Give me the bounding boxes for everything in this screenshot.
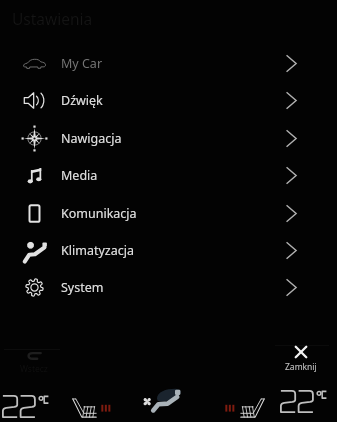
button[interactable]: Temperatura pasazera 22 stopnie — [280, 390, 330, 415]
button[interactable]: Dźwięk — [0, 82, 337, 119]
button[interactable]: Nawigacja — [0, 120, 337, 157]
button[interactable]: Zamknij — [277, 346, 325, 373]
other: Wstecz — [26, 350, 42, 361]
button[interactable]: Komunikacja — [0, 195, 337, 232]
button[interactable]: Podgrzewanie fotela pasazera — [239, 398, 266, 418]
button[interactable]: Wentylacja fotela — [142, 388, 187, 413]
staticText: Klimatyzacja — [61, 242, 134, 259]
button[interactable]: Podgrzewanie fotela kierowcy — [71, 398, 98, 418]
staticText: System — [61, 279, 104, 296]
other: Zamknij — [295, 346, 307, 358]
staticText: My Car — [61, 55, 103, 72]
button[interactable]: Temperatura kierowcy 22 stopnie — [2, 395, 52, 420]
button[interactable]: My Car — [0, 45, 337, 82]
staticText: Media — [61, 167, 98, 184]
staticText: Komunikacja — [61, 205, 137, 222]
staticText: Nawigacja — [61, 130, 122, 147]
staticText: Dźwięk — [61, 92, 103, 109]
staticText: Zamknij — [285, 361, 317, 373]
button[interactable]: Wstecz — [10, 350, 58, 375]
button[interactable]: System — [0, 269, 337, 306]
button[interactable]: Media — [0, 157, 337, 194]
staticText: Ustawienia — [12, 8, 93, 29]
button[interactable]: Klimatyzacja — [0, 232, 337, 269]
